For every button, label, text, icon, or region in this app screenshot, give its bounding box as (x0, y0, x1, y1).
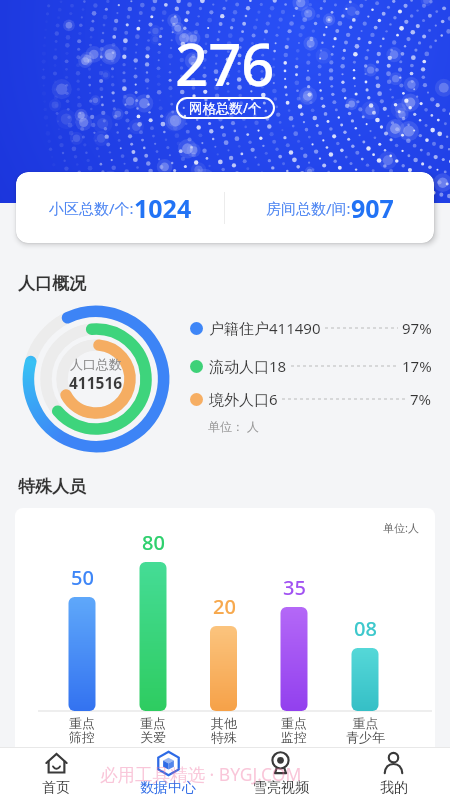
staticText: 人口总数 (70, 356, 122, 372)
button[interactable]: 网格总数/个 (176, 97, 275, 119)
staticText: 网格总数/个 (189, 99, 262, 117)
staticText: 单位： 人 (208, 418, 260, 434)
button[interactable]: 房间总数/间: (225, 191, 434, 225)
button[interactable]: 境外人口6 (190, 388, 432, 410)
staticText: 20 (213, 593, 236, 620)
staticText: 7% (410, 389, 432, 409)
staticText: 房间总数/间: (266, 198, 351, 218)
staticText: 411516 (69, 372, 123, 393)
button[interactable]: 流动人口18 (190, 355, 432, 377)
staticText: 人口概况 (18, 273, 86, 294)
button[interactable]: 我的 (337, 747, 450, 800)
staticText: 重点 关爱 (140, 715, 166, 746)
staticText: 907 (351, 191, 394, 225)
staticText: 单位:人 (383, 520, 419, 535)
staticText: 首页 (42, 779, 70, 797)
staticText: 数据中心 (140, 779, 196, 797)
staticText: 其他 特殊 (211, 715, 237, 746)
staticText: 户籍住户411490 (209, 318, 321, 338)
staticText: 97% (402, 318, 432, 338)
staticText: 特殊人员 (18, 476, 86, 497)
staticText: 重点 监控 (281, 715, 307, 746)
button[interactable]: 小区总数/个: (16, 191, 224, 225)
staticText: 重点 筛控 (69, 715, 95, 746)
button[interactable]: 数据中心 (112, 747, 224, 800)
button[interactable]: 雪亮视频 (224, 747, 337, 800)
staticText: 80 (142, 529, 165, 556)
staticText: 1024 (134, 191, 192, 225)
staticText: 276 (175, 24, 275, 103)
staticText: 小区总数/个: (49, 198, 134, 218)
button[interactable]: 户籍住户411490 (190, 317, 432, 339)
staticText: 重点 青少年 (346, 715, 385, 746)
button[interactable]: 首页 (0, 747, 112, 800)
staticText: 雪亮视频 (253, 779, 309, 797)
staticText: 35 (283, 574, 306, 601)
staticText: 08 (354, 615, 377, 642)
staticText: 17% (402, 356, 432, 376)
staticText: 50 (71, 564, 94, 591)
staticText: 境外人口6 (209, 389, 278, 409)
staticText: 我的 (380, 779, 408, 797)
staticText: 必用工具精选 · BYGJ.COM (100, 762, 302, 786)
staticText: 流动人口18 (209, 356, 287, 376)
